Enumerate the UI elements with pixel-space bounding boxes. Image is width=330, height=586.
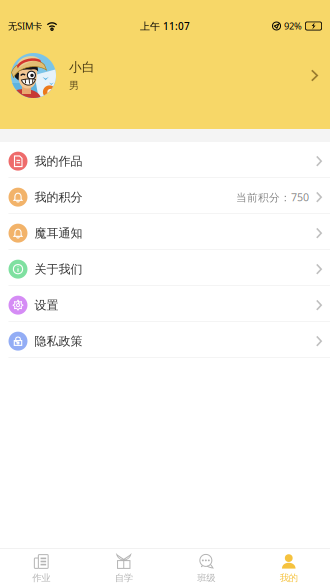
staticText: 魔耳通知 (34, 226, 82, 241)
staticText: 小白 (69, 59, 95, 75)
staticText: 设置 (34, 298, 58, 313)
staticText: 关于我们 (34, 262, 82, 277)
button[interactable]: 我的 (247, 549, 330, 586)
button[interactable]: 我的积分 (0, 178, 330, 214)
button[interactable]: 设置 (0, 286, 330, 322)
staticText: 作业 (32, 572, 50, 584)
button[interactable]: 魔耳通知 (0, 214, 330, 250)
button[interactable]: 自学 (82, 549, 165, 586)
staticText: 92% (284, 20, 302, 32)
staticText: 当前积分：750 (236, 190, 309, 204)
staticText: 我的积分 (34, 190, 82, 205)
button[interactable]: 隐私政策 (0, 322, 330, 358)
button[interactable]: 小白 (0, 37, 330, 114)
staticText: 我的作品 (34, 154, 82, 169)
button[interactable]: 我的作品 (0, 142, 330, 178)
staticText: 无SIM卡 (8, 20, 42, 32)
staticText: 上午 11:07 (140, 19, 190, 33)
staticText: 班级 (197, 572, 215, 584)
button[interactable]: 班级 (165, 549, 247, 586)
button[interactable]: 关于我们 (0, 250, 330, 286)
staticText: 隐私政策 (34, 334, 82, 349)
staticText: 男 (69, 79, 79, 92)
button[interactable]: 作业 (0, 549, 82, 586)
staticText: 我的 (280, 572, 298, 584)
staticText: 自学 (115, 572, 133, 584)
